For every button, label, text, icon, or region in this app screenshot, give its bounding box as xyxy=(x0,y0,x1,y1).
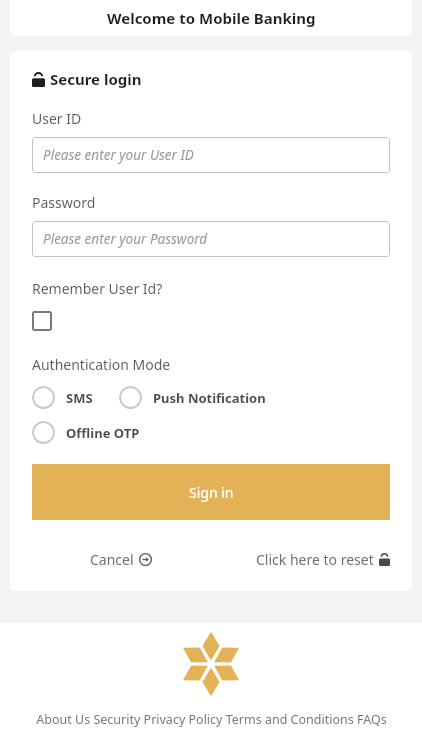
staticText: Please enter your User ID xyxy=(43,146,194,164)
button[interactable]: Please enter your Password xyxy=(32,221,390,257)
button[interactable]: Sign in xyxy=(32,464,390,520)
button[interactable]: Please enter your User ID xyxy=(32,137,390,173)
button[interactable]: Remember User Id checkbox xyxy=(32,311,52,331)
button[interactable]: Offline OTP xyxy=(32,421,140,444)
staticText: Welcome to Mobile Banking xyxy=(107,8,316,28)
staticText: About Us Security Privacy Policy Terms a… xyxy=(36,711,387,728)
staticText: Secure login xyxy=(50,69,142,89)
staticText: Authentication Mode xyxy=(32,355,171,374)
staticText: User ID xyxy=(32,109,82,128)
staticText: Click here to reset xyxy=(256,550,374,569)
button[interactable]: Push Notification xyxy=(119,386,266,409)
staticText: Please enter your Password xyxy=(43,230,208,248)
staticText: Remember User Id? xyxy=(32,279,163,298)
staticText: Password xyxy=(32,193,96,212)
staticText: Sign in xyxy=(189,483,234,502)
button[interactable]: SMS xyxy=(32,386,93,409)
button[interactable]: About Us Security Privacy Policy Terms a… xyxy=(0,711,422,728)
staticText: Offline OTP xyxy=(66,424,140,442)
staticText: Push Notification xyxy=(153,389,266,407)
button[interactable]: Cancel xyxy=(90,550,152,569)
button[interactable]: Click here to reset xyxy=(256,550,390,569)
staticText: SMS xyxy=(66,389,93,407)
staticText: Cancel xyxy=(90,550,134,569)
